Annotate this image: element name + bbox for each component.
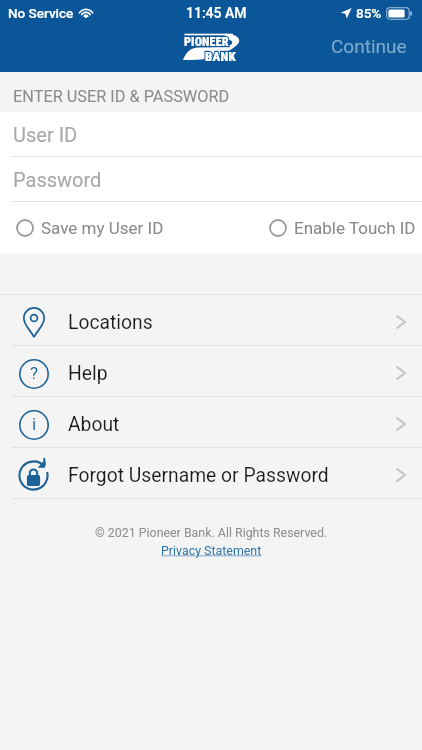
staticText: Enable Touch ID <box>294 218 416 238</box>
staticText: No Service <box>8 5 74 21</box>
staticText: PIONEER <box>184 35 229 49</box>
staticText: Password <box>13 168 102 191</box>
button[interactable]: Password <box>0 157 422 201</box>
button[interactable]: About <box>0 397 422 447</box>
button[interactable]: Enable Touch ID <box>269 218 416 238</box>
button[interactable]: Continue <box>331 35 407 57</box>
staticText: © 2021 Pioneer Bank. All Rights Reserved… <box>95 525 328 540</box>
staticText: ? <box>30 363 39 383</box>
button[interactable]: Privacy Statement <box>161 543 262 558</box>
staticText: User ID <box>13 123 78 146</box>
button[interactable]: Save my User ID <box>0 218 164 238</box>
staticText: 85% <box>356 5 382 21</box>
staticText: Privacy Statement <box>161 543 262 558</box>
button[interactable]: Locations <box>0 295 422 345</box>
button[interactable]: Forgot Username or Password <box>0 448 422 498</box>
staticText: Help <box>68 362 108 385</box>
staticText: Forgot Username or Password <box>68 464 329 487</box>
staticText: PIONEER <box>184 35 229 49</box>
staticText: ENTER USER ID & PASSWORD <box>13 87 230 106</box>
staticText: Continue <box>331 35 407 57</box>
staticText: BANK <box>205 49 236 64</box>
staticText: Locations <box>68 311 153 334</box>
button[interactable]: User ID <box>0 112 422 156</box>
staticText: BANK <box>205 49 236 64</box>
staticText: i <box>32 414 37 434</box>
staticText: 11:45 AM <box>186 5 247 21</box>
staticText: About <box>68 413 120 436</box>
button[interactable]: Help <box>0 346 422 396</box>
staticText: Save my User ID <box>41 218 164 238</box>
